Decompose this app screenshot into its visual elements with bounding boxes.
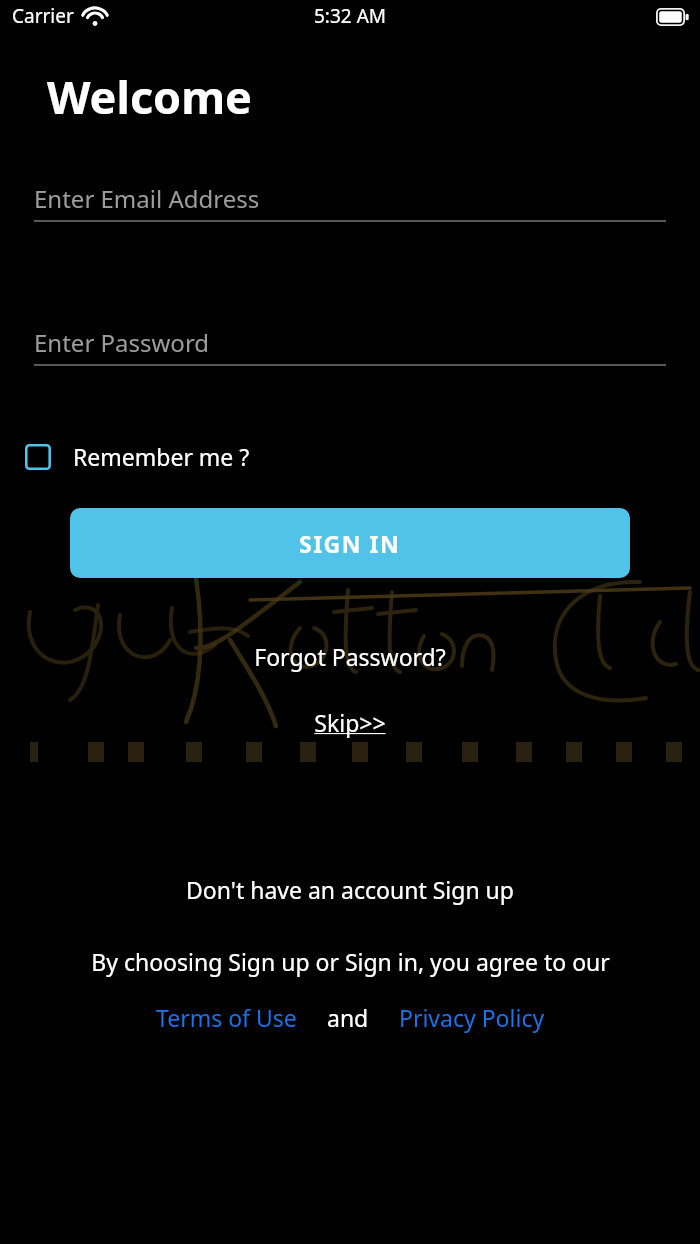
staticText: Forgot Password?	[254, 641, 446, 672]
staticText: By choosing Sign up or Sign in, you agre…	[91, 946, 610, 977]
staticText: SIGN IN	[299, 528, 401, 559]
staticText: Enter Password	[34, 326, 210, 359]
other: Wi-Fi signal	[82, 7, 108, 27]
button[interactable]: Don't have an account Sign up	[178, 870, 522, 909]
other: Battery full	[656, 8, 690, 26]
button[interactable]: Enter Password	[34, 324, 666, 382]
staticText: Enter Email Address	[34, 182, 260, 215]
button[interactable]: Remember me ?	[25, 441, 260, 472]
staticText: Don't have an account Sign up	[186, 874, 514, 905]
button[interactable]: Privacy Policy	[395, 998, 549, 1037]
button[interactable]: Terms of Use	[152, 998, 301, 1037]
staticText: Privacy Policy	[399, 1002, 545, 1033]
button[interactable]: Enter Email Address	[34, 180, 666, 238]
button[interactable]: Forgot Password?	[246, 637, 454, 676]
staticText: and	[327, 1002, 369, 1033]
button[interactable]: Skip>>	[306, 703, 394, 742]
staticText: Terms of Use	[156, 1002, 297, 1033]
button[interactable]: SIGN IN	[70, 508, 630, 578]
staticText: Remember me ?	[73, 441, 250, 472]
staticText: Welcome	[47, 66, 252, 127]
staticText: Carrier	[12, 3, 74, 29]
staticText: Skip>>	[314, 707, 386, 738]
staticText: 5:32 AM	[314, 3, 387, 29]
